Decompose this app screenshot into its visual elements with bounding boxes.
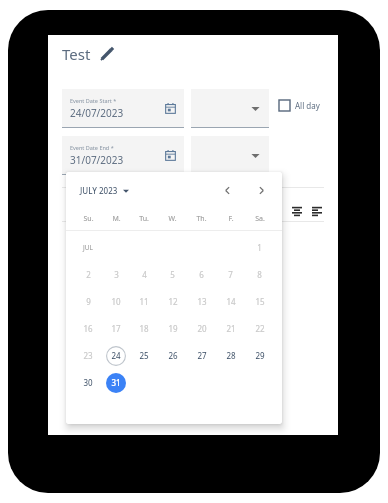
staticText: 16 [83,323,93,334]
button[interactable]: 15 [245,288,274,315]
button[interactable]: 10 [102,288,130,315]
button[interactable]: Open dropdown [191,89,269,128]
other: Open dropdown [251,151,260,160]
staticText: 31/07/2023 [70,153,124,167]
staticText: 4 [142,269,147,280]
button[interactable]: 14 [216,288,245,315]
button[interactable]: 13 [187,288,216,315]
staticText: 12 [168,296,178,307]
staticText: 25 [139,350,149,361]
button[interactable]: Pick date [165,150,176,161]
button[interactable]: Previous month [220,183,234,197]
button[interactable]: 27 [187,342,216,369]
button[interactable]: 28 [216,342,245,369]
button[interactable]: 3 [102,261,130,288]
button[interactable]: JULY 2023 [80,185,129,196]
staticText: 8 [257,269,262,280]
staticText: M. [112,214,121,224]
button[interactable]: 9 [74,288,102,315]
staticText: Th. [196,214,207,224]
staticText: 24/07/2023 [70,106,124,120]
staticText: 29 [255,350,265,361]
staticText: 7 [228,269,233,280]
staticText: 28 [226,350,236,361]
staticText: 9 [86,296,91,307]
staticText: W. [168,214,177,224]
button[interactable]: 2 [74,261,102,288]
staticText: 30 [83,377,93,388]
staticText: 14 [226,296,236,307]
staticText: 23 [83,350,93,361]
button[interactable]: 7 [216,261,245,288]
button[interactable]: Test [62,44,115,64]
button[interactable]: All day [279,100,320,111]
button[interactable]: 5 [158,261,187,288]
button[interactable]: 29 [245,342,274,369]
button[interactable]: 18 [130,315,158,342]
staticText: 27 [197,350,207,361]
staticText: 1 [257,242,262,253]
button[interactable]: 1 [245,234,274,261]
button[interactable]: Align justify [309,203,325,219]
staticText: JUL [83,243,93,252]
staticText: Event Date Start * [70,97,117,104]
button[interactable]: 30 [74,369,102,396]
button[interactable]: 12 [158,288,187,315]
button[interactable]: 11 [130,288,158,315]
button[interactable]: 21 [216,315,245,342]
button[interactable]: Open dropdown [191,136,269,175]
button[interactable]: 4 [130,261,158,288]
staticText: 5 [170,269,175,280]
staticText: 15 [255,296,265,307]
staticText: 3 [114,269,119,280]
staticText: 24 [111,350,121,361]
staticText: 17 [111,323,121,334]
button[interactable]: 20 [187,315,216,342]
staticText: 19 [168,323,178,334]
staticText: 21 [226,323,236,334]
staticText: 26 [168,350,178,361]
button[interactable]: Event Date End * [62,136,184,175]
staticText: Event Date End * [70,144,114,151]
button[interactable]: 22 [245,315,274,342]
staticText: 31 [111,377,121,388]
staticText: All day [295,100,320,111]
button[interactable]: 31 [102,369,130,396]
button[interactable]: JUL [74,234,102,261]
button[interactable]: 26 [158,342,187,369]
button[interactable]: 23 [74,342,102,369]
button[interactable]: 16 [74,315,102,342]
button[interactable]: Align center [289,203,305,219]
staticText: 18 [139,323,149,334]
button[interactable]: 19 [158,315,187,342]
button[interactable]: 6 [187,261,216,288]
staticText: 20 [197,323,207,334]
staticText: Test [62,44,91,64]
button[interactable]: 8 [245,261,274,288]
staticText: Su. [83,214,94,224]
staticText: 2 [86,269,91,280]
staticText: F. [228,214,234,224]
button[interactable]: Event Date Start * [62,89,184,128]
staticText: 11 [139,296,149,307]
button[interactable]: Edit title [99,46,115,62]
staticText: 13 [197,296,207,307]
button[interactable]: 24 [102,342,130,369]
button[interactable]: Pick date [165,103,176,114]
button[interactable]: Next month [254,183,268,197]
staticText: Sa. [255,214,265,224]
staticText: Tu. [139,214,149,224]
other: Open dropdown [251,104,260,113]
staticText: 22 [255,323,265,334]
staticText: JULY 2023 [80,185,118,196]
staticText: 10 [111,296,121,307]
button[interactable]: 17 [102,315,130,342]
staticText: 6 [199,269,204,280]
button[interactable]: 25 [130,342,158,369]
